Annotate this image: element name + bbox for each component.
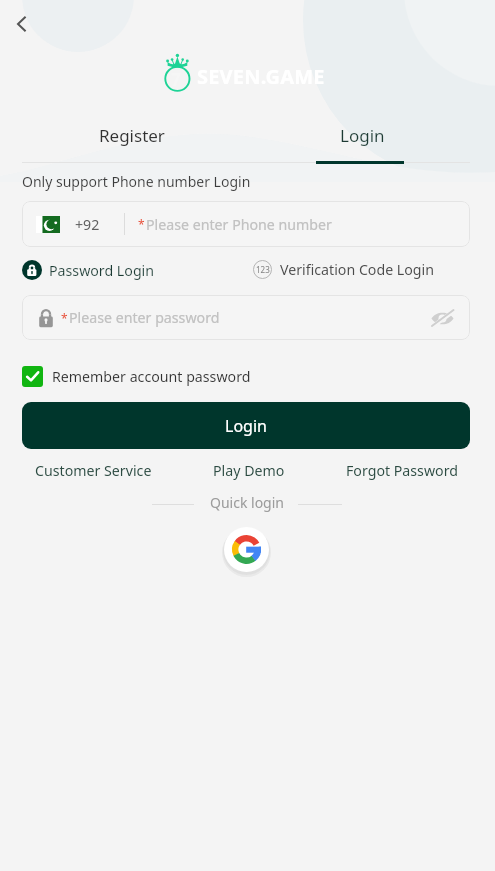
- staticText: Login: [225, 415, 267, 437]
- button[interactable]: Forgot Password: [346, 459, 458, 481]
- staticText: Please enter password: [69, 308, 220, 327]
- staticText: *: [61, 310, 68, 326]
- staticText: Customer Service: [35, 461, 152, 480]
- button[interactable]: 123: [253, 260, 435, 279]
- button[interactable]: Show password: [422, 298, 462, 338]
- staticText: Login: [340, 124, 385, 147]
- button[interactable]: Register: [17, 112, 247, 158]
- staticText: SEVEN.GAME: [197, 63, 325, 90]
- button[interactable]: Login: [22, 402, 470, 449]
- staticText: +92: [75, 215, 100, 234]
- staticText: Register: [99, 124, 165, 147]
- staticText: 7: [171, 68, 181, 91]
- button[interactable]: +92: [22, 201, 470, 247]
- button[interactable]: Back: [2, 4, 42, 44]
- staticText: Only support Phone number Login: [22, 172, 251, 191]
- staticText: Please enter Phone number: [146, 215, 332, 234]
- staticText: Forgot Password: [346, 461, 458, 480]
- staticText: Verification Code Login: [280, 260, 435, 279]
- staticText: Remember account password: [52, 367, 251, 386]
- button[interactable]: Remember account password: [22, 366, 251, 387]
- staticText: Password Login: [49, 261, 155, 280]
- staticText: 123: [256, 264, 270, 275]
- button[interactable]: Sign in with Google: [224, 527, 269, 572]
- button[interactable]: Login: [247, 112, 477, 158]
- button[interactable]: Password Login: [22, 260, 155, 280]
- staticText: *: [138, 216, 145, 232]
- button[interactable]: Customer Service: [35, 459, 152, 481]
- staticText: Quick login: [210, 493, 284, 512]
- staticText: Play Demo: [213, 461, 285, 480]
- button[interactable]: *: [22, 295, 470, 340]
- button[interactable]: Play Demo: [213, 459, 285, 481]
